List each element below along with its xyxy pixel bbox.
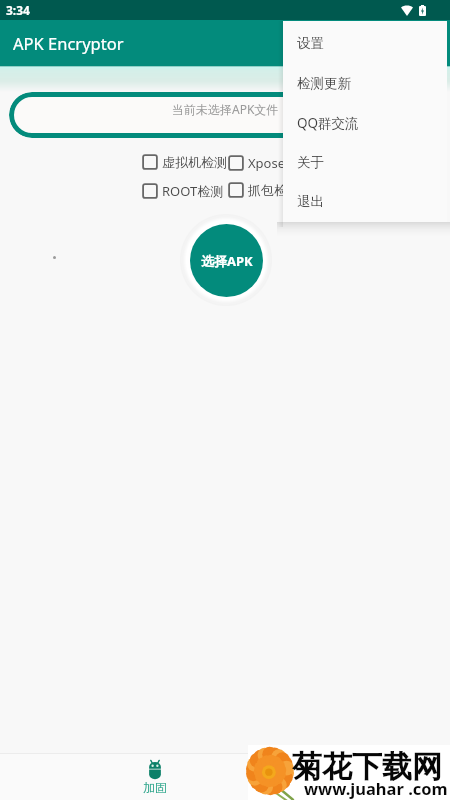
button[interactable]: QQ群交流 [283, 103, 447, 143]
button[interactable]: 虚拟机检测 [142, 154, 227, 170]
staticText: 加固 [143, 780, 167, 795]
button[interactable]: 设置 [283, 23, 447, 63]
button[interactable]: 检测更新 [283, 63, 447, 103]
staticText: 关于 [297, 154, 324, 171]
button[interactable]: 选择APK [190, 224, 263, 297]
staticText: APK Encryptor [13, 32, 124, 54]
staticText: 当前未选择APK文件 [172, 101, 279, 117]
button[interactable]: ROOT检测 [142, 182, 224, 200]
staticText: ROOT检测 [162, 182, 224, 200]
staticText: 退出 [297, 193, 324, 210]
staticText: 抓包检测 [248, 182, 300, 198]
button[interactable]: 当前未选择APK文件 [9, 92, 441, 138]
staticText: Xposed检测 [248, 154, 320, 172]
staticText: 设置 [297, 35, 324, 52]
staticText: 虚拟机检测 [162, 154, 227, 170]
staticText: 选择APK [201, 252, 253, 270]
button[interactable]: 加固 [136, 760, 174, 795]
button[interactable]: 关于 [283, 143, 447, 182]
button[interactable]: Xposed检测 [228, 154, 320, 172]
staticText: 检测更新 [297, 75, 351, 92]
button[interactable]: 退出 [283, 182, 447, 221]
button[interactable]: 抓包检测 [228, 182, 300, 198]
staticText: www.juahar .com [304, 777, 448, 799]
staticText: 菊花下载网 [292, 748, 442, 786]
staticText: 3:34 [6, 2, 30, 18]
staticText: QQ群交流 [297, 114, 359, 132]
